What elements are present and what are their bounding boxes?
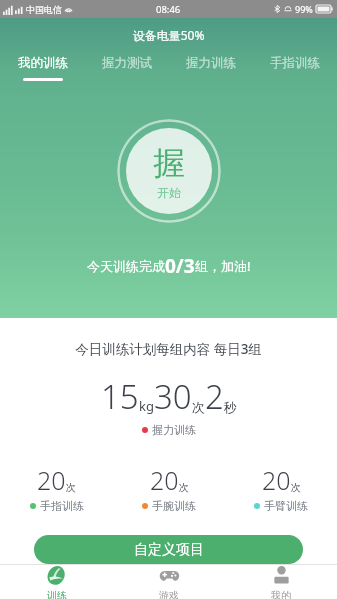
- staticText: 握力训练: [186, 55, 236, 71]
- staticText: 我的训练: [18, 55, 68, 71]
- button[interactable]: 自定义项目: [34, 535, 303, 564]
- staticText: 游戏: [159, 589, 179, 599]
- staticText: 30: [154, 374, 192, 419]
- staticText: 我的: [271, 589, 291, 599]
- staticText: 秒: [224, 399, 237, 415]
- staticText: 99%: [295, 3, 313, 15]
- staticText: 今日训练计划每组内容 每日3组: [0, 340, 337, 358]
- staticText: 中国电信: [26, 4, 62, 15]
- button[interactable]: 我的训练: [0, 55, 85, 81]
- staticText: 开始: [157, 185, 181, 200]
- button[interactable]: 训练: [0, 565, 113, 599]
- button[interactable]: 手指训练: [253, 55, 337, 78]
- staticText: 次: [192, 399, 205, 415]
- button[interactable]: 我的: [225, 565, 337, 599]
- button[interactable]: 握力测试: [85, 55, 169, 78]
- staticText: 2: [205, 374, 224, 419]
- staticText: 手臂训练: [264, 499, 308, 513]
- staticText: 次: [179, 481, 189, 494]
- staticText: 握力测试: [102, 55, 152, 71]
- staticText: 15: [101, 374, 139, 419]
- staticText: 20: [150, 463, 179, 497]
- staticText: 0/3: [165, 253, 195, 279]
- staticText: 握力训练: [152, 423, 196, 437]
- staticText: 训练: [47, 589, 67, 599]
- staticText: kg: [139, 397, 154, 415]
- staticText: 握: [153, 143, 185, 183]
- staticText: 08:46: [156, 3, 181, 16]
- staticText: 组，加油!: [195, 257, 251, 275]
- staticText: 自定义项目: [134, 541, 204, 559]
- staticText: 20: [37, 463, 66, 497]
- staticText: 设备电量50%: [0, 27, 337, 43]
- staticText: 今天训练完成: [87, 258, 165, 274]
- staticText: 次: [66, 481, 76, 494]
- button[interactable]: 游戏: [113, 565, 225, 599]
- button[interactable]: 握: [117, 119, 221, 223]
- staticText: 次: [291, 481, 301, 494]
- button[interactable]: 握力训练: [169, 55, 253, 78]
- staticText: 手指训练: [40, 499, 84, 513]
- staticText: 手腕训练: [152, 499, 196, 513]
- staticText: 20: [262, 463, 291, 497]
- staticText: 手指训练: [270, 55, 320, 71]
